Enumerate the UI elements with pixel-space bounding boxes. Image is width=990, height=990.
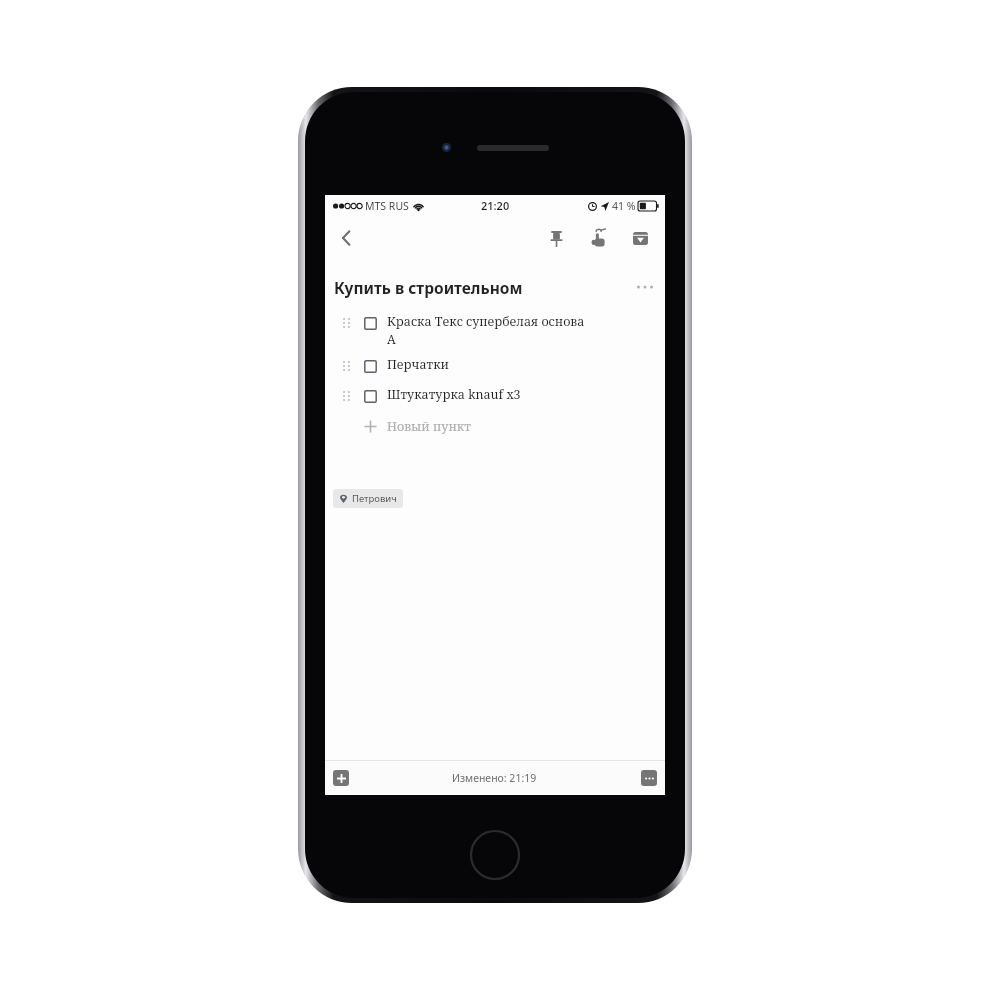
staticText: 41 % xyxy=(612,199,636,213)
staticText: Купить в строительном xyxy=(334,277,523,298)
staticText: Перчатки xyxy=(387,356,449,373)
button[interactable]: Pin xyxy=(535,217,577,259)
staticText: MTS RUS xyxy=(365,199,409,213)
button[interactable]: Перчатки xyxy=(325,351,665,381)
button[interactable]: Back xyxy=(325,216,369,260)
staticText: 21:20 xyxy=(481,198,510,213)
staticText: Штукатурка knauf x3 xyxy=(387,386,521,403)
button[interactable]: Reminder xyxy=(577,217,619,259)
staticText: Петрович xyxy=(352,492,397,505)
button[interactable]: More xyxy=(641,770,657,786)
button[interactable]: Петрович xyxy=(333,489,403,508)
staticText: Новый пункт xyxy=(387,418,471,435)
button[interactable]: Штукатурка knauf x3 xyxy=(325,381,665,411)
button[interactable]: Archive xyxy=(619,217,661,259)
button[interactable]: More options xyxy=(628,272,662,302)
staticText: Изменено: 21:19 xyxy=(452,771,537,785)
button[interactable]: Новый пункт xyxy=(325,411,665,441)
button[interactable]: Краска Текс супербелая основа А xyxy=(325,308,665,351)
staticText: Краска Текс супербелая основа А xyxy=(387,313,585,348)
button[interactable]: Add xyxy=(333,770,349,786)
